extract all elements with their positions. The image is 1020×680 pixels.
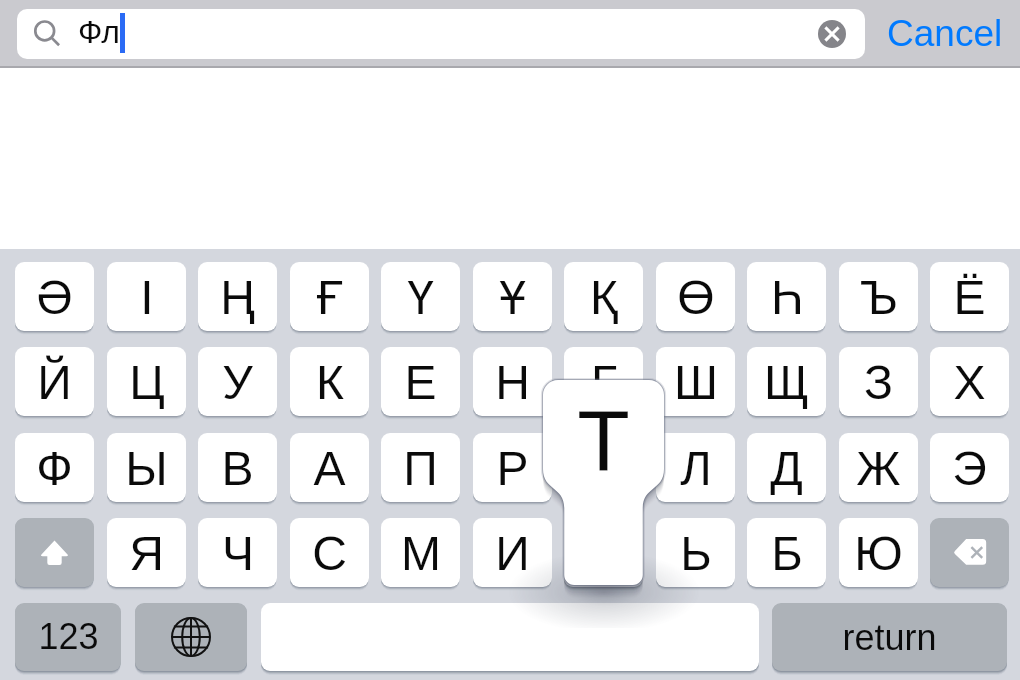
button[interactable]: О <box>564 433 643 502</box>
staticText: И <box>495 527 530 581</box>
staticText: А <box>313 442 346 496</box>
button[interactable]: Й <box>15 347 94 416</box>
button[interactable]: Ю <box>839 518 918 587</box>
staticText: Н <box>495 356 530 410</box>
button[interactable]: Next keyboard <box>135 603 247 671</box>
staticText: Ч <box>222 527 254 581</box>
staticText: О <box>585 442 623 496</box>
staticText: І <box>140 271 154 325</box>
staticText: У <box>222 356 253 410</box>
button[interactable]: І <box>107 262 186 331</box>
button[interactable]: Ұ <box>473 262 552 331</box>
button[interactable]: Ё <box>930 262 1009 331</box>
staticText: Х <box>953 356 986 410</box>
staticText: Ө <box>677 271 715 325</box>
button[interactable]: Қ <box>564 262 643 331</box>
button[interactable]: А <box>290 433 369 502</box>
button[interactable]: Н <box>473 347 552 416</box>
staticText: З <box>864 356 893 410</box>
staticText: К <box>316 356 344 410</box>
button[interactable]: Х <box>930 347 1009 416</box>
staticText: Ё <box>953 271 986 325</box>
staticText: Ү <box>407 271 434 325</box>
button[interactable]: И <box>473 518 552 587</box>
button[interactable]: Ы <box>107 433 186 502</box>
button[interactable]: Ъ <box>839 262 918 331</box>
staticText: Ұ <box>499 271 526 325</box>
button[interactable]: Фл <box>17 9 865 59</box>
button[interactable]: Backspace <box>930 518 1009 587</box>
staticText: Ы <box>125 442 168 496</box>
button[interactable]: Ч <box>198 518 277 587</box>
button[interactable]: М <box>381 518 460 587</box>
staticText: М <box>401 527 441 581</box>
button[interactable]: У <box>198 347 277 416</box>
button[interactable]: З <box>839 347 918 416</box>
button[interactable]: 123 <box>15 603 121 671</box>
button[interactable]: Clear text <box>818 20 846 48</box>
button[interactable]: Б <box>747 518 826 587</box>
button[interactable]: Ң <box>198 262 277 331</box>
button[interactable]: Space <box>261 603 759 671</box>
staticText: Ә <box>36 271 73 325</box>
button[interactable]: Һ <box>747 262 826 331</box>
staticText: Ж <box>856 442 901 496</box>
staticText: Д <box>770 442 803 496</box>
button[interactable]: Ө <box>656 262 735 331</box>
staticText: Ь <box>680 527 712 581</box>
staticText: Һ <box>771 271 803 325</box>
staticText: Й <box>37 356 72 410</box>
button[interactable]: Ц <box>107 347 186 416</box>
staticText: Ғ <box>317 271 343 325</box>
button[interactable]: Ж <box>839 433 918 502</box>
button[interactable]: Т <box>564 518 643 587</box>
staticText: Л <box>680 442 712 496</box>
button[interactable]: Г <box>564 347 643 416</box>
button[interactable]: К <box>290 347 369 416</box>
staticText: П <box>403 442 438 496</box>
button[interactable]: Д <box>747 433 826 502</box>
button[interactable]: Р <box>473 433 552 502</box>
button[interactable]: Cancel <box>884 4 1006 62</box>
staticText: Р <box>496 442 529 496</box>
button[interactable]: Ф <box>15 433 94 502</box>
button[interactable]: Ш <box>656 347 735 416</box>
staticText: Г <box>591 356 617 410</box>
button[interactable]: Ә <box>15 262 94 331</box>
button[interactable]: Shift <box>15 518 94 587</box>
staticText: Я <box>129 527 164 581</box>
button[interactable]: Ү <box>381 262 460 331</box>
button[interactable]: С <box>290 518 369 587</box>
staticText: Э <box>952 442 987 496</box>
staticText: В <box>221 442 254 496</box>
button[interactable]: Ғ <box>290 262 369 331</box>
staticText: Б <box>771 527 803 581</box>
staticText: 123 <box>38 616 99 656</box>
staticText: Ъ <box>860 271 898 325</box>
button[interactable]: В <box>198 433 277 502</box>
staticText: Фл <box>78 14 120 50</box>
button[interactable]: Е <box>381 347 460 416</box>
button[interactable]: Щ <box>747 347 826 416</box>
staticText: Қ <box>590 271 618 325</box>
button[interactable]: П <box>381 433 460 502</box>
staticText: Ц <box>129 356 165 410</box>
staticText: Ш <box>674 356 718 410</box>
button[interactable]: Л <box>656 433 735 502</box>
staticText: С <box>312 527 347 581</box>
staticText: Ф <box>36 442 73 496</box>
staticText: Cancel <box>887 13 1003 54</box>
staticText: return <box>842 617 937 657</box>
staticText: Т <box>517 392 690 502</box>
staticText: Ю <box>854 527 903 581</box>
staticText: Ң <box>220 271 255 325</box>
button[interactable]: Ь <box>656 518 735 587</box>
staticText: Щ <box>764 356 809 410</box>
button[interactable]: return <box>772 603 1007 671</box>
button[interactable]: Э <box>930 433 1009 502</box>
button[interactable]: Я <box>107 518 186 587</box>
staticText: Е <box>404 356 437 410</box>
